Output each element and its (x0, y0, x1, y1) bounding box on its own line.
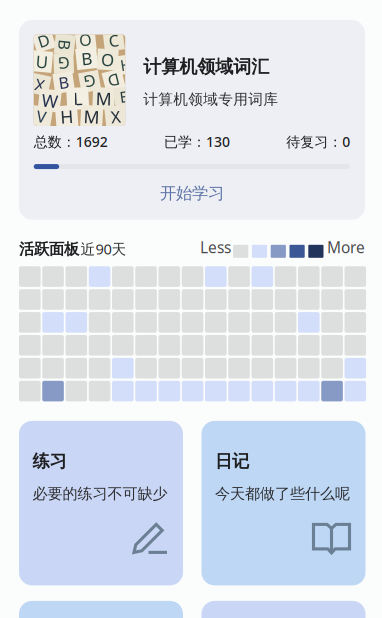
staticText: G (84, 71, 96, 92)
button[interactable]: 单词本 (19, 601, 183, 618)
button[interactable]: 统计 (201, 601, 365, 618)
staticText: 总数：1692 (34, 132, 108, 151)
staticText: G (58, 53, 70, 74)
staticText: 计算机领域词汇 (143, 55, 269, 78)
staticText: C (109, 30, 119, 51)
staticText: B (60, 34, 70, 55)
staticText: B (81, 47, 92, 70)
staticText: W (42, 88, 58, 112)
staticText: X (35, 74, 44, 95)
staticText: M (84, 104, 100, 128)
staticText: 近90天 (80, 239, 126, 259)
staticText: 必要的练习不可缺少 (32, 484, 167, 503)
staticText: D (38, 30, 50, 51)
button[interactable]: 练习 (19, 421, 183, 585)
staticText: O (80, 30, 92, 51)
staticText: 日记 (215, 450, 249, 472)
staticText: 练习 (32, 450, 66, 472)
staticText: 计算机领域专用词库 (143, 90, 278, 109)
staticText: V (37, 106, 47, 127)
staticText: L (73, 86, 82, 110)
staticText: 待复习：0 (286, 132, 350, 151)
staticText: B (59, 72, 69, 93)
staticText: 活跃面板 (19, 239, 79, 259)
staticText: 今天都做了些什么呢 (215, 484, 350, 503)
staticText: Less (200, 237, 231, 258)
staticText: H (60, 104, 73, 128)
staticText: X (111, 105, 121, 128)
staticText: D (108, 70, 120, 91)
staticText: E (120, 86, 128, 107)
button[interactable]: 开始学习 (19, 169, 365, 220)
staticText: 已学：130 (164, 132, 230, 151)
staticText: O (101, 48, 114, 71)
staticText: More (327, 237, 365, 258)
staticText: H (120, 54, 131, 75)
staticText: 开始学习 (160, 183, 224, 204)
button[interactable]: 日记 (201, 421, 365, 585)
staticText: M (96, 86, 112, 110)
staticText: U (36, 50, 48, 73)
